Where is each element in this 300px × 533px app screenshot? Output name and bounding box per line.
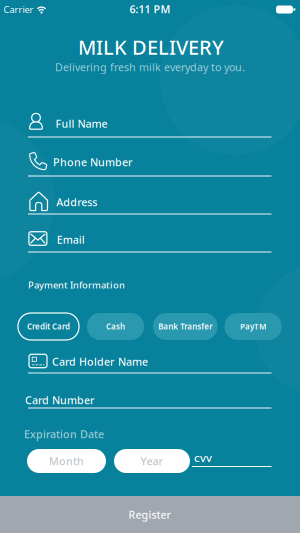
- button[interactable]: PayTM: [224, 313, 281, 340]
- staticText: Delivering fresh milk everyday to you.: [55, 60, 245, 74]
- staticText: Full Name: [55, 116, 107, 131]
- staticText: CVV: [194, 452, 212, 465]
- staticText: Expiration Date: [24, 427, 104, 441]
- staticText: Register: [128, 507, 171, 522]
- button[interactable]: Month: [27, 449, 106, 473]
- button[interactable]: Address: [25, 185, 275, 219]
- button[interactable]: CVV: [185, 445, 278, 472]
- button[interactable]: Card Number: [25, 388, 275, 412]
- staticText: MILK DELIVERY: [78, 34, 224, 60]
- staticText: Phone Number: [53, 155, 133, 169]
- button[interactable]: Credit Card: [18, 313, 79, 340]
- button[interactable]: Phone Number: [25, 147, 275, 181]
- staticText: Year: [140, 454, 163, 468]
- staticText: PayTM: [240, 321, 266, 332]
- staticText: 6:11 PM: [129, 2, 170, 16]
- staticText: Carrier: [3, 3, 33, 16]
- staticText: Bank Transfer: [158, 321, 212, 332]
- staticText: Cash: [106, 321, 125, 332]
- button[interactable]: Card Holder Name: [25, 344, 275, 378]
- button[interactable]: Bank Transfer: [153, 313, 217, 340]
- button[interactable]: Cash: [87, 313, 144, 340]
- button[interactable]: Register: [0, 496, 300, 533]
- staticText: Month: [49, 454, 84, 468]
- button[interactable]: Full Name: [25, 108, 275, 142]
- staticText: Payment Information: [28, 279, 125, 291]
- staticText: Email: [57, 232, 85, 247]
- staticText: Card Holder Name: [52, 354, 148, 369]
- staticText: Address: [56, 195, 97, 209]
- button[interactable]: Year: [114, 449, 190, 473]
- staticText: Card Number: [25, 393, 95, 407]
- staticText: Credit Card: [27, 321, 70, 332]
- button[interactable]: Email: [25, 223, 275, 257]
